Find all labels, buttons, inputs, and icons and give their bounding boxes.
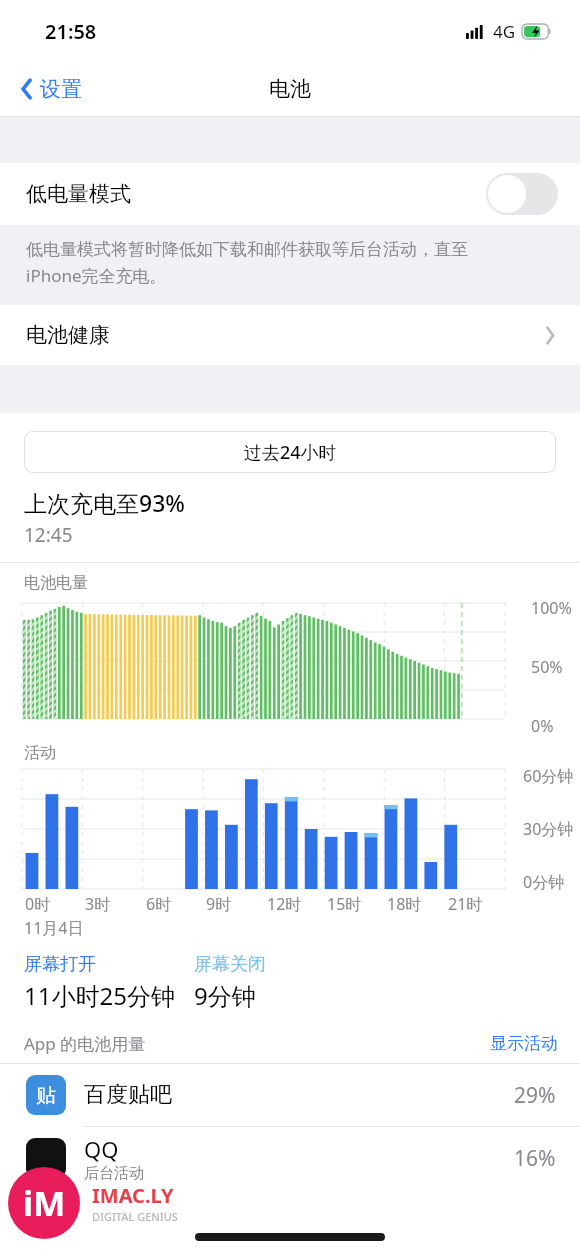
staticText: 11小时25分钟 [24, 979, 175, 1012]
staticText: 11月4日 [24, 917, 84, 939]
staticText: 低电量模式将暂时降低如下载和邮件获取等后台活动，直至 iPhone完全充电。 [26, 239, 468, 287]
staticText: 活动 [24, 743, 56, 763]
staticText: 后台活动 [84, 1164, 144, 1183]
staticText: 4G [493, 20, 516, 43]
button[interactable]: 贴 [0, 1064, 580, 1126]
staticText: 过去24小时 [244, 440, 337, 465]
staticText: 9时 [206, 893, 232, 915]
staticText: 0时 [25, 893, 51, 915]
staticText: 百度贴吧 [84, 1081, 514, 1109]
staticText: 29% [514, 1081, 556, 1110]
staticText: 电池 [269, 76, 311, 102]
staticText: 显示活动 [490, 1033, 558, 1054]
staticText: 屏幕打开 [24, 953, 96, 976]
staticText: 18时 [387, 893, 422, 915]
staticText: QQ [84, 1134, 119, 1164]
staticText: 15时 [327, 893, 362, 915]
staticText: 21时 [448, 893, 483, 915]
staticText: 上次充电至93% [24, 487, 185, 518]
button[interactable]: 过去24小时 [24, 431, 556, 473]
button[interactable]: 设置 [14, 70, 88, 108]
staticText: 设置 [40, 76, 82, 102]
staticText: 0% [531, 715, 554, 737]
staticText: 电池电量 [24, 573, 88, 593]
staticText: 9分钟 [194, 979, 256, 1012]
staticText: 60分钟 [523, 765, 574, 787]
staticText: 0分钟 [523, 871, 565, 893]
staticText: 6时 [146, 893, 172, 915]
button[interactable]: 电池健康 [0, 305, 580, 365]
staticText: 屏幕关闭 [194, 953, 266, 976]
staticText: 12:45 [24, 522, 73, 548]
staticText: 3时 [85, 893, 111, 915]
staticText: 30分钟 [523, 818, 574, 840]
button[interactable]: 低电量模式开关 [486, 173, 558, 215]
staticText: 贴 [36, 1083, 56, 1108]
staticText: App 的电池用量 [24, 1032, 490, 1055]
staticText: 100% [531, 597, 572, 619]
staticText: DIGITAL GENIUS [92, 1209, 178, 1224]
button[interactable]: QQ [0, 1127, 580, 1189]
button[interactable]: 显示活动 [490, 1033, 558, 1054]
staticText: 电池健康 [26, 322, 544, 348]
staticText: iM [23, 1180, 66, 1226]
button[interactable]: 低电量模式 [0, 163, 580, 225]
staticText: 16% [514, 1144, 556, 1173]
staticText: 12时 [267, 893, 302, 915]
staticText: IMAC.LY [92, 1182, 174, 1209]
staticText: 50% [531, 656, 563, 678]
staticText: 21:58 [45, 18, 97, 45]
staticText: 低电量模式 [26, 181, 486, 207]
